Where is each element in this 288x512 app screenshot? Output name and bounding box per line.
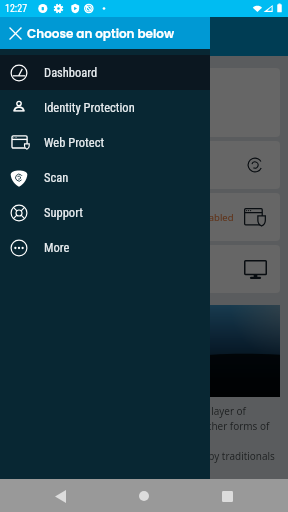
button[interactable]: Identity Protection	[0, 90, 210, 125]
staticText: malware. Threats that are often not dete…	[8, 449, 275, 463]
button[interactable]: More	[0, 230, 210, 265]
button[interactable]: Web Protect	[0, 125, 210, 160]
staticText: Scan	[44, 170, 69, 185]
staticText: Dashboard	[44, 65, 98, 80]
staticText: Disabled	[195, 211, 234, 224]
staticText: Web Protect	[44, 135, 105, 150]
staticText: More	[44, 240, 70, 255]
button[interactable]: Back	[44, 480, 76, 512]
button[interactable]: Support	[0, 195, 210, 230]
staticText: Choose an option below	[27, 25, 175, 42]
button[interactable]: Recents	[211, 480, 243, 512]
button[interactable]: Close	[0, 17, 26, 49]
button[interactable]: Scan	[0, 160, 210, 195]
staticText: Identity Protection	[44, 100, 135, 115]
button[interactable]: Dashboard	[0, 55, 210, 90]
staticText: security that protects your device again…	[8, 419, 270, 433]
staticText: Support	[44, 205, 83, 220]
staticText: 12:27	[5, 3, 28, 15]
button[interactable]: Home	[128, 480, 160, 512]
staticText: Ransomware protection adds an additional…	[8, 404, 246, 418]
